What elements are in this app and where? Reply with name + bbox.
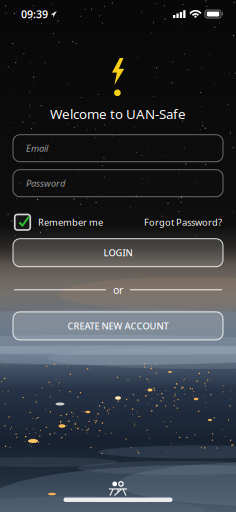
- staticText: Email: [26, 142, 48, 154]
- staticText: LOGIN: [103, 246, 132, 259]
- button[interactable]: Forgot Password?: [144, 216, 222, 228]
- button[interactable]: LOGIN: [13, 239, 223, 267]
- button[interactable]: App info: [108, 481, 128, 495]
- button[interactable]: Remember me: [14, 214, 103, 231]
- staticText: or: [113, 283, 123, 297]
- staticText: Welcome to UAN-Safe: [50, 105, 186, 123]
- staticText: Forgot Password?: [144, 216, 222, 228]
- staticText: Remember me: [38, 216, 103, 228]
- staticText: Password: [26, 177, 65, 189]
- staticText: CREATE NEW ACCOUNT: [67, 320, 168, 332]
- button[interactable]: CREATE NEW ACCOUNT: [13, 312, 223, 340]
- staticText: 09:39: [21, 7, 48, 21]
